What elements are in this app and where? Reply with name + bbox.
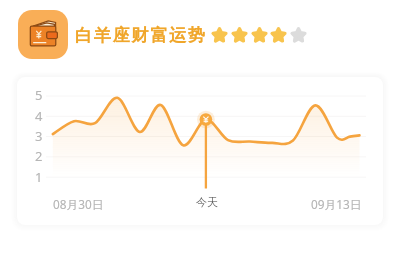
other: Wealth fortune	[18, 10, 68, 59]
staticText: 09月13日	[311, 196, 362, 212]
staticText: 白羊座财富运势	[75, 24, 207, 46]
button[interactable]	[17, 77, 383, 225]
staticText: 5	[35, 86, 43, 104]
staticText: 2	[35, 147, 43, 165]
staticText: 1	[35, 168, 43, 186]
staticText: 4	[35, 107, 43, 125]
staticText: 3	[35, 127, 43, 145]
staticText: 今天	[196, 195, 218, 209]
staticText: 08月30日	[53, 196, 104, 212]
button[interactable]: Wealth fortune	[18, 10, 68, 59]
